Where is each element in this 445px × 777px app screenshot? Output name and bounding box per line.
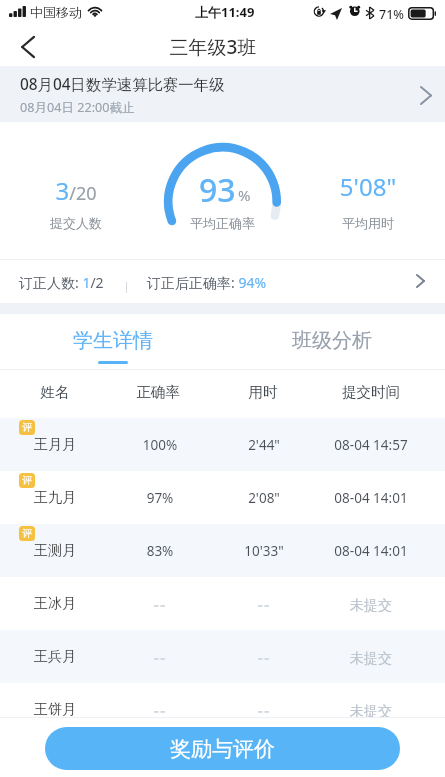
staticText: 未提交 (311, 703, 431, 721)
staticText: 正确率 (98, 383, 218, 401)
staticText: 提交时间 (311, 383, 431, 401)
staticText: 2'44" (204, 436, 324, 454)
button[interactable]: 王饼月 (0, 683, 445, 736)
staticText: 中国移动 (30, 4, 82, 20)
staticText: 97% (100, 489, 220, 507)
staticText: 王九月 (0, 489, 115, 507)
button[interactable]: 评 (0, 471, 445, 524)
button[interactable]: 王兵月 (0, 630, 445, 683)
button[interactable]: 学生详情 (53, 314, 173, 369)
staticText: 王饼月 (0, 701, 115, 719)
staticText: 姓名 (0, 383, 115, 401)
staticText: 3/20 (16, 174, 136, 207)
staticText: 学生详情 (73, 328, 153, 353)
staticText: 提交人数 (16, 215, 136, 231)
staticText: 5'08" (308, 170, 428, 203)
staticText: 评 (22, 474, 32, 487)
staticText: 08-04 14:01 (311, 542, 431, 560)
staticText: 2'08" (204, 489, 324, 507)
staticText: 班级分析 (292, 328, 372, 353)
staticText: 10'33" (204, 542, 324, 560)
staticText: 奖励与评价 (170, 736, 275, 762)
staticText: 未提交 (311, 650, 431, 668)
staticText: 平均正确率 (164, 215, 281, 231)
staticText: 订正后正确率: 94% (147, 273, 267, 292)
staticText: 王冰月 (0, 595, 115, 613)
staticText: 71% (379, 6, 404, 23)
button[interactable]: 班级分析 (272, 314, 392, 369)
staticText: 用时 (203, 383, 323, 401)
staticText: 订正人数: 1/2 (19, 273, 104, 292)
staticText: 评 (22, 421, 32, 434)
staticText: 08-04 14:57 (311, 436, 431, 454)
staticText: 平均用时 (308, 215, 428, 231)
button[interactable]: 王冰月 (0, 577, 445, 630)
staticText: 83% (100, 542, 220, 560)
staticText: 93 (199, 168, 236, 212)
button[interactable]: 08月04日数学速算比赛一年级 (3, 69, 442, 122)
button[interactable]: 评 (0, 418, 445, 471)
button[interactable]: 评 (0, 524, 445, 577)
staticText: 上午11:49 (195, 3, 255, 21)
staticText: 王兵月 (0, 648, 115, 666)
staticText: % (238, 185, 251, 205)
staticText: 08月04日 22:00截止 (20, 99, 135, 116)
staticText: 08月04日数学速算比赛一年级 (20, 74, 225, 95)
button[interactable]: 订正人数: 1/2 (0, 260, 445, 303)
button[interactable]: 奖励与评价 (45, 727, 400, 770)
staticText: 王测月 (0, 542, 115, 560)
staticText: 08-04 14:01 (311, 489, 431, 507)
staticText: 评 (22, 527, 32, 540)
staticText: 未提交 (311, 597, 431, 615)
staticText: 100% (100, 436, 220, 454)
staticText: 三年级3班 (153, 34, 273, 60)
staticText: 王月月 (0, 436, 115, 454)
button[interactable]: Back (6, 28, 48, 66)
